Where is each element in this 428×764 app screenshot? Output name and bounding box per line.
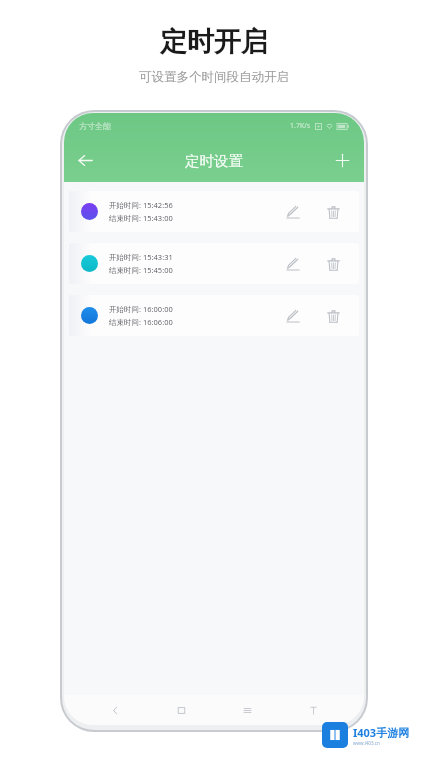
button[interactable]: 开始时间: 15:42:56 — [69, 191, 359, 232]
staticText: 开始时间: 15:42:56 — [109, 200, 173, 210]
staticText: www.i403.cn — [353, 740, 380, 746]
button[interactable]: Add — [321, 139, 364, 182]
button[interactable]: Delete — [318, 301, 348, 331]
button[interactable]: Delete — [318, 197, 348, 227]
button[interactable]: Back — [100, 695, 130, 725]
button[interactable]: I403手游网 — [322, 722, 410, 748]
button[interactable]: Back — [64, 139, 107, 182]
button[interactable]: Delete — [318, 249, 348, 279]
button[interactable]: Edit — [278, 249, 308, 279]
staticText: 开始时间: 15:43:31 — [109, 252, 173, 262]
button[interactable]: Recents — [232, 695, 262, 725]
staticText: 可设置多个时间段自动开启 — [139, 69, 289, 85]
button[interactable]: Edit — [278, 301, 308, 331]
staticText: 方寸全能 — [79, 121, 111, 131]
staticText: 结束时间: 15:43:00 — [109, 213, 173, 223]
button[interactable]: 开始时间: 15:43:31 — [69, 243, 359, 284]
button[interactable]: Home — [166, 695, 196, 725]
staticText: 1.7K/s — [290, 121, 311, 131]
staticText: 开始时间: 16:00:00 — [109, 304, 173, 314]
button[interactable]: Edit — [278, 197, 308, 227]
button[interactable]: 开始时间: 16:00:00 — [69, 295, 359, 336]
staticText: 定时开启 — [160, 25, 268, 59]
staticText: I403手游网 — [353, 725, 410, 740]
staticText: 定时设置 — [185, 152, 243, 170]
staticText: 结束时间: 16:06:00 — [109, 317, 173, 327]
button[interactable]: Notifications — [298, 695, 328, 725]
staticText: 结束时间: 15:45:00 — [109, 265, 173, 275]
